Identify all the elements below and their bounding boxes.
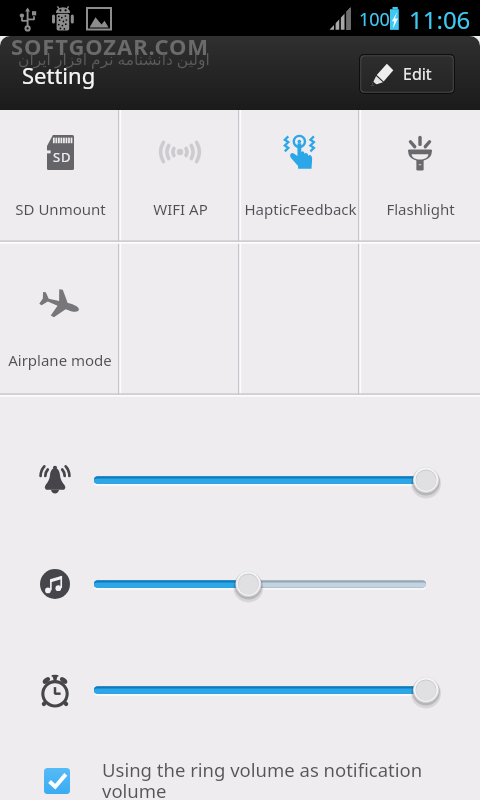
staticText: Airplane mode [8,350,112,370]
button[interactable] [80,664,450,716]
staticText: Using the ring volume as notification vo… [102,757,440,800]
button[interactable]: Edit [359,54,455,94]
staticText: SD [53,148,72,166]
staticText: Flashlight [386,199,455,219]
button[interactable] [80,454,450,506]
staticText: Edit [403,63,432,85]
button[interactable]: HapticFeedback [240,110,360,242]
button[interactable]: WIFI AP [120,110,240,242]
staticText: Setting [22,60,96,90]
staticText: HapticFeedback [244,199,357,219]
button[interactable]: Airplane mode [0,242,120,395]
staticText: SOFTGOZAR.COM [11,31,209,61]
staticText: SD Unmount [15,199,106,219]
button[interactable]: Using the ring volume as notification vo… [0,752,480,800]
staticText: 11:06 [409,3,471,36]
button[interactable]: Flashlight [360,110,480,242]
staticText: 100 [359,7,390,32]
button[interactable] [80,558,450,610]
staticText: WIFI AP [153,199,208,219]
staticText: اولین دانشنامه نرم افزار ایران [18,48,210,69]
button[interactable]: SD [0,110,120,242]
